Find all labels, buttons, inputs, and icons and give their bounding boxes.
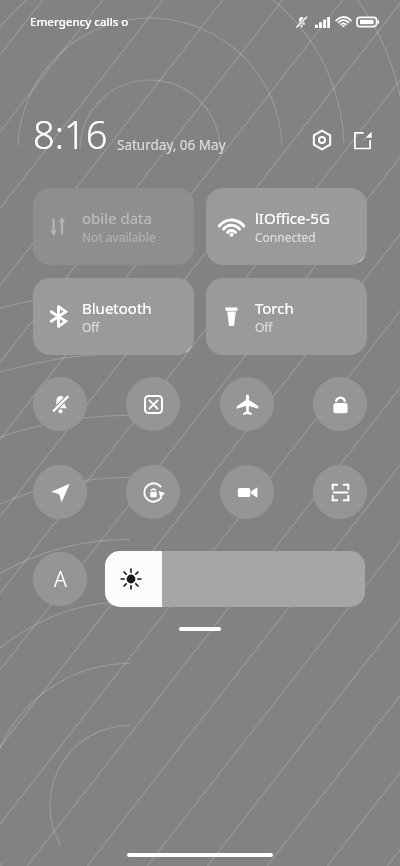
button[interactable]: Auto rotate xyxy=(126,465,180,519)
staticText: 8:16 xyxy=(33,108,108,160)
staticText: Off xyxy=(82,319,100,335)
staticText: Bluetooth xyxy=(82,298,152,318)
button[interactable]: Screenshot xyxy=(126,377,180,431)
button[interactable]: Auto brightness xyxy=(33,552,87,606)
button[interactable]: Settings xyxy=(306,124,338,156)
button[interactable]: Screen recorder xyxy=(220,465,274,519)
button[interactable]: Edit xyxy=(346,124,378,156)
button[interactable]: Bluetooth xyxy=(33,278,194,355)
staticText: A xyxy=(54,565,67,594)
staticText: lIOffice-5G xyxy=(255,208,330,228)
staticText: Not available xyxy=(82,229,156,245)
button[interactable]: Silent mode xyxy=(33,377,87,431)
staticText: Saturday, 06 May xyxy=(117,136,226,154)
button[interactable]: Torch xyxy=(206,278,367,355)
button[interactable]: Airplane mode xyxy=(220,377,274,431)
button[interactable]: Brightness xyxy=(105,551,365,607)
staticText: obile data xyxy=(82,208,152,228)
button[interactable]: Location xyxy=(33,465,87,519)
staticText: Connected xyxy=(255,229,316,245)
staticText: Emergency calls o xyxy=(30,14,129,30)
button[interactable]: obile data xyxy=(33,188,194,265)
button[interactable]: Scanner xyxy=(313,465,367,519)
button[interactable]: lIOffice-5G xyxy=(206,188,367,265)
button[interactable]: Lock screen xyxy=(313,377,367,431)
staticText: Torch xyxy=(255,298,294,318)
staticText: Off xyxy=(255,319,273,335)
